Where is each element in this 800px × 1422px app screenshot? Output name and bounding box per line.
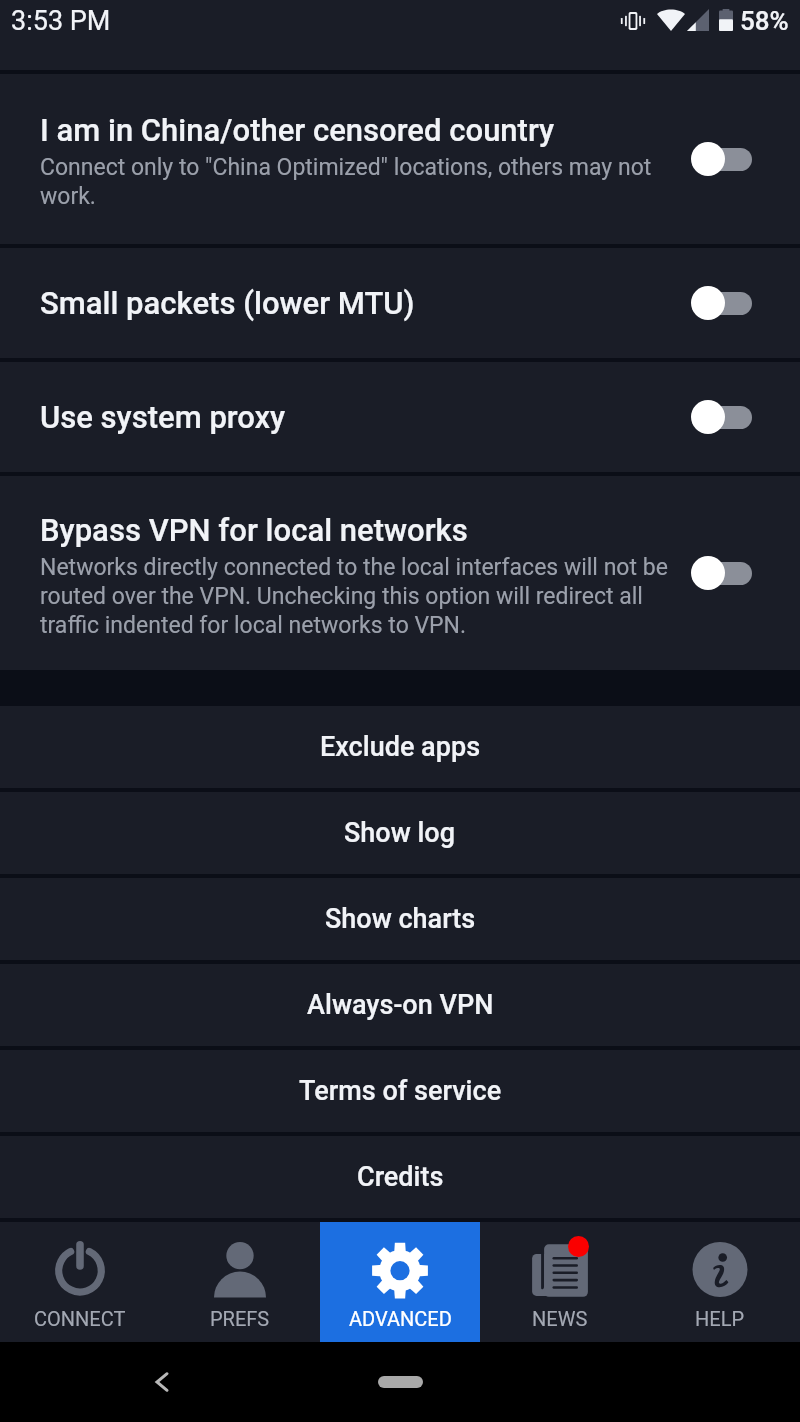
staticText: NEWS <box>532 1307 588 1330</box>
staticText: HELP <box>695 1307 745 1330</box>
staticText: PREFS <box>210 1307 270 1330</box>
staticText: Connect only to "China Optimized" locati… <box>40 154 674 210</box>
staticText: ADVANCED <box>349 1307 452 1330</box>
staticText: I am in China/other censored country <box>40 112 555 148</box>
button[interactable]: Exclude apps <box>0 706 800 788</box>
staticText: Terms of service <box>299 1075 502 1107</box>
button[interactable]: CONNECT <box>0 1222 160 1342</box>
button[interactable]: Show charts <box>0 878 800 960</box>
staticText: Small packets (lower MTU) <box>40 285 415 321</box>
button[interactable]: Credits <box>0 1136 800 1218</box>
staticText: Exclude apps <box>320 731 481 763</box>
staticText: Show charts <box>325 903 476 935</box>
staticText: Credits <box>357 1161 444 1193</box>
button[interactable]: Terms of service <box>0 1050 800 1132</box>
button[interactable]: Use system proxy <box>0 362 800 472</box>
staticText: CONNECT <box>34 1307 126 1330</box>
button[interactable]: PREFS <box>160 1222 320 1342</box>
staticText: Always-on VPN <box>307 989 494 1021</box>
staticText: Show log <box>344 817 456 849</box>
staticText: Use system proxy <box>40 399 286 435</box>
other: Home <box>378 1376 423 1388</box>
button[interactable]: Show log <box>0 792 800 874</box>
button[interactable]: Always-on VPN <box>0 964 800 1046</box>
staticText: 3:53 PM <box>11 5 111 37</box>
staticText: Networks directly connected to the local… <box>40 554 674 639</box>
button[interactable]: NEWS <box>480 1222 640 1342</box>
button[interactable]: Small packets (lower MTU) <box>0 248 800 358</box>
staticText: 58% <box>740 6 789 36</box>
button[interactable]: ADVANCED <box>320 1222 480 1342</box>
staticText: Bypass VPN for local networks <box>40 512 468 548</box>
button[interactable]: I am in China/other censored country <box>0 74 800 244</box>
button[interactable]: Bypass VPN for local networks <box>0 476 800 670</box>
other: Back <box>144 1364 180 1400</box>
button[interactable]: HELP <box>640 1222 800 1342</box>
